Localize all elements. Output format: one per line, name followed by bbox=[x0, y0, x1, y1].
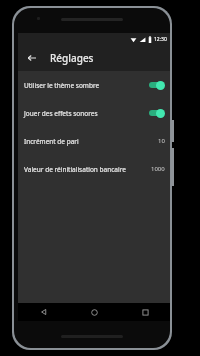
staticText: Valeur de réinitialisation bancaire bbox=[24, 165, 151, 174]
staticText: Utiliser le thème sombre bbox=[24, 81, 147, 90]
staticText: 10 bbox=[158, 137, 165, 145]
button[interactable]: Back bbox=[22, 48, 42, 68]
button[interactable]: Recents bbox=[120, 303, 170, 321]
button[interactable]: Valeur de réinitialisation bancaire bbox=[18, 155, 170, 183]
button[interactable]: Utiliser le thème sombre bbox=[18, 71, 170, 99]
staticText: Réglages bbox=[50, 51, 94, 65]
button[interactable]: Jouer des effets sonores bbox=[18, 99, 170, 127]
staticText: 1000 bbox=[151, 165, 165, 173]
staticText: 12:30 bbox=[154, 36, 167, 43]
button[interactable]: Home bbox=[69, 303, 120, 321]
staticText: Incrément de pari bbox=[24, 137, 158, 146]
button[interactable]: Incrément de pari bbox=[18, 127, 170, 155]
staticText: Jouer des effets sonores bbox=[24, 109, 147, 118]
button[interactable]: Back bbox=[18, 303, 69, 321]
